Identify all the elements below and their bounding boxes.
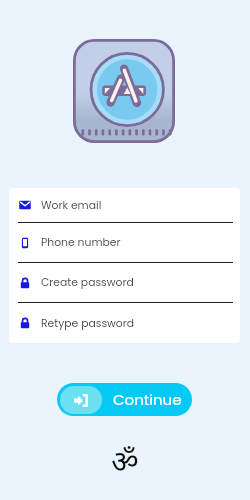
staticText: Create password <box>41 275 134 290</box>
button[interactable]: Phone number <box>9 223 240 263</box>
staticText: Work email <box>41 198 102 213</box>
staticText: ॐ <box>111 440 139 481</box>
button[interactable]: Work email <box>9 188 240 223</box>
staticText: Retype password <box>41 316 135 331</box>
button[interactable]: Retype password <box>9 303 240 343</box>
staticText: Phone number <box>41 235 121 250</box>
button[interactable]: Create password <box>9 263 240 303</box>
staticText: Continue <box>113 389 182 410</box>
button[interactable]: Continue <box>57 383 192 416</box>
